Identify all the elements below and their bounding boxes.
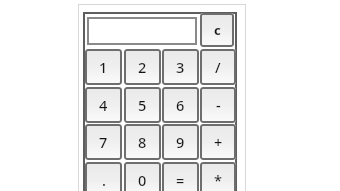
button[interactable]: . xyxy=(85,162,122,191)
staticText: 6 xyxy=(176,95,185,115)
button[interactable]: c xyxy=(200,13,234,47)
staticText: 9 xyxy=(176,132,185,152)
staticText: * xyxy=(214,170,222,190)
button[interactable]: 1 xyxy=(85,49,122,85)
staticText: 2 xyxy=(138,57,147,77)
button[interactable]: 9 xyxy=(162,124,199,160)
staticText: 7 xyxy=(99,132,108,152)
staticText: c xyxy=(214,21,221,39)
button[interactable]: 6 xyxy=(162,87,199,123)
staticText: 1 xyxy=(99,57,108,77)
button[interactable]: 7 xyxy=(85,124,122,160)
staticText: 3 xyxy=(176,57,185,77)
button[interactable]: = xyxy=(162,162,199,191)
staticText: = xyxy=(176,170,185,190)
button[interactable] xyxy=(87,17,197,45)
staticText: 5 xyxy=(138,95,147,115)
staticText: 0 xyxy=(138,170,147,190)
staticText: . xyxy=(102,170,106,190)
staticText: / xyxy=(215,57,221,77)
button[interactable]: * xyxy=(200,162,236,191)
button[interactable]: / xyxy=(200,49,236,85)
staticText: + xyxy=(214,132,223,152)
button[interactable]: 4 xyxy=(85,87,122,123)
button[interactable]: 8 xyxy=(124,124,161,160)
staticText: 4 xyxy=(99,95,108,115)
button[interactable]: + xyxy=(200,124,236,160)
staticText: - xyxy=(216,95,221,115)
button[interactable]: 3 xyxy=(162,49,199,85)
button[interactable]: 5 xyxy=(124,87,161,123)
staticText: 8 xyxy=(138,132,147,152)
button[interactable]: 0 xyxy=(124,162,161,191)
button[interactable]: - xyxy=(200,87,236,123)
button[interactable]: 2 xyxy=(124,49,161,85)
